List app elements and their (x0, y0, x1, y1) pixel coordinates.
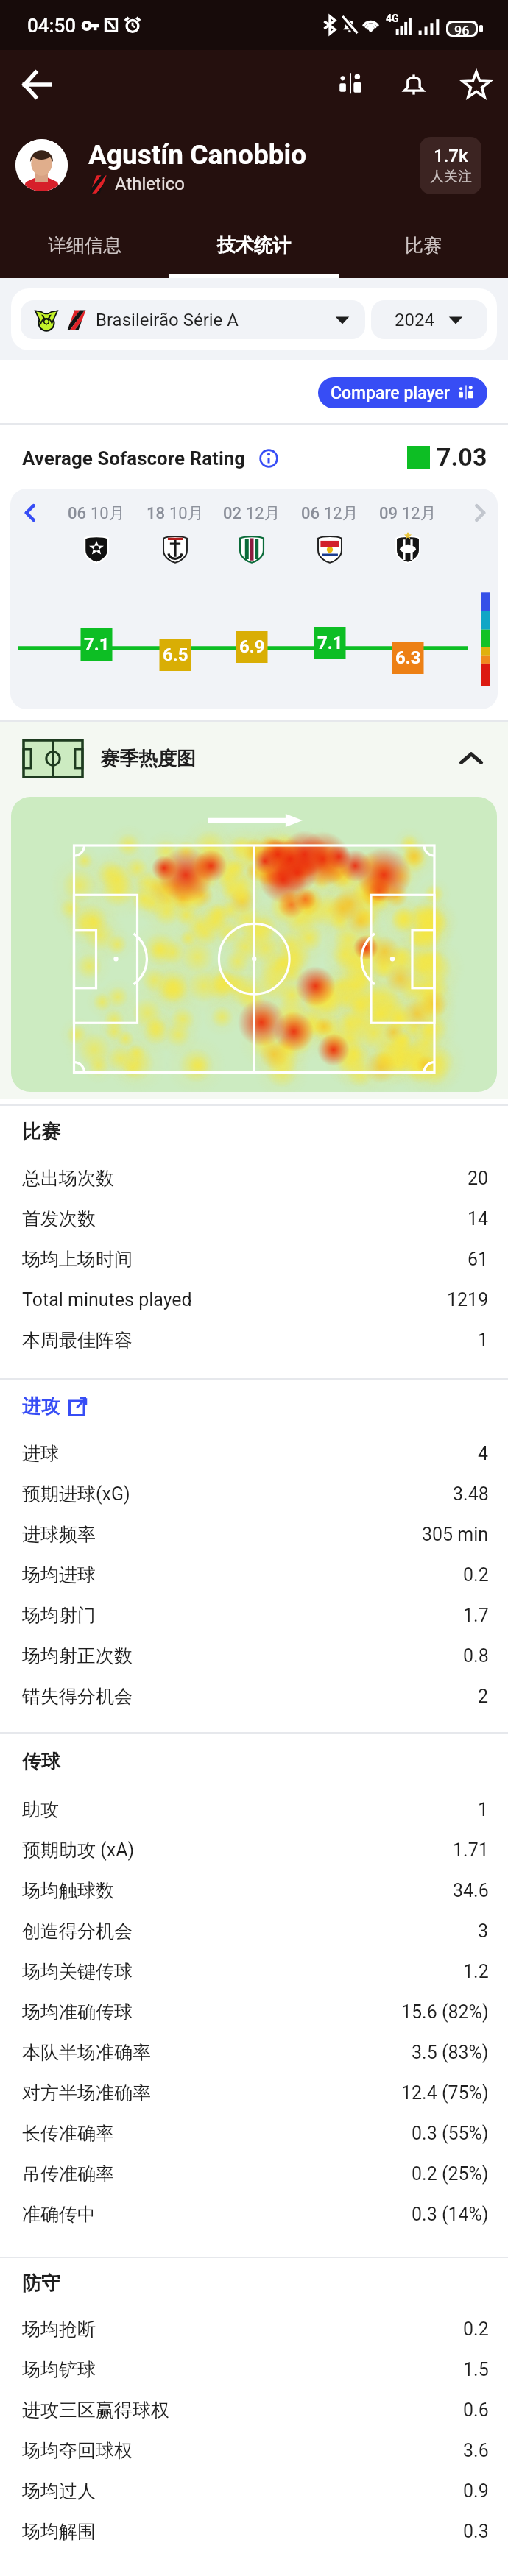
button[interactable]: 2024 (371, 300, 487, 339)
button[interactable]: 进攻三区赢得球权 (0, 2390, 508, 2430)
staticText: 错失得分机会 (22, 1685, 133, 1708)
button[interactable]: 6.9 (236, 631, 268, 663)
staticText: 0.3 (14%) (412, 2204, 489, 2225)
button[interactable]: 场均过人 (0, 2471, 508, 2511)
staticText: 12.4 (75%) (401, 2082, 489, 2104)
button[interactable]: Back (18, 65, 56, 104)
staticText: 12月 (246, 503, 281, 524)
button[interactable]: 错失得分机会 (0, 1676, 508, 1717)
button[interactable]: Notifications (395, 65, 433, 104)
button[interactable]: 预期进球(xG) (0, 1474, 508, 1514)
staticText: 预期进球(xG) (22, 1483, 130, 1505)
staticText: 详细信息 (48, 234, 121, 257)
button[interactable]: Favorite (457, 65, 495, 104)
button[interactable]: Compare players (331, 65, 370, 104)
staticText: 06 (68, 504, 87, 523)
staticText: 7.03 (437, 442, 487, 472)
staticText: 0.8 (463, 1645, 489, 1667)
staticText: 首发次数 (22, 1207, 96, 1230)
staticText: 6.3 (395, 647, 421, 668)
button[interactable]: 进球 (0, 1433, 508, 1474)
staticText: 18 (147, 504, 166, 523)
button[interactable]: 场均夺回球权 (0, 2430, 508, 2471)
button[interactable]: 场均准确传球 (0, 1992, 508, 2032)
staticText: 15.6 (82%) (401, 2001, 489, 2023)
staticText: 场均触球数 (22, 1879, 114, 1902)
button[interactable]: 比赛 (339, 221, 508, 278)
staticText: 0.2 (463, 1564, 489, 1586)
button[interactable]: 场均铲球 (0, 2349, 508, 2390)
button[interactable]: 场均射门 (0, 1595, 508, 1636)
staticText: 1 (478, 1799, 489, 1820)
staticText: 02 (223, 504, 242, 523)
button[interactable]: 场均触球数 (0, 1870, 508, 1911)
button[interactable]: 助攻 (0, 1789, 508, 1830)
button[interactable]: Compare player (318, 377, 487, 408)
button[interactable]: 吊传准确率 (0, 2154, 508, 2194)
button[interactable]: 本队半场准确率 (0, 2032, 508, 2073)
staticText: 0.3 (463, 2521, 489, 2542)
button[interactable]: 进攻 (22, 1380, 508, 1433)
staticText: 10月 (91, 503, 125, 524)
button[interactable]: 长传准确率 (0, 2113, 508, 2154)
button[interactable]: 技术统计 (169, 221, 339, 278)
button[interactable]: Previous (14, 497, 46, 529)
button[interactable]: 创造得分机会 (0, 1911, 508, 1951)
staticText: 进攻 (22, 1394, 60, 1419)
staticText: 吊传准确率 (22, 2162, 114, 2185)
staticText: 7.1 (317, 633, 343, 653)
button[interactable]: Next (464, 497, 496, 529)
button[interactable]: 场均射正次数 (0, 1636, 508, 1676)
staticText: 20 (468, 1168, 489, 1189)
staticText: 长传准确率 (22, 2122, 114, 2145)
staticText: 61 (468, 1249, 489, 1270)
staticText: 场均关键传球 (22, 1960, 133, 1983)
button[interactable]: 首发次数 (0, 1199, 508, 1239)
button[interactable]: 场均进球 (0, 1555, 508, 1595)
staticText: 09 (379, 504, 398, 523)
staticText: 传球 (22, 1750, 60, 1774)
button[interactable]: Brasileirão Série A (21, 300, 365, 339)
staticText: 本队半场准确率 (22, 2041, 151, 2064)
staticText: Total minutes played (22, 1289, 192, 1310)
button[interactable]: 6.5 (160, 639, 191, 671)
staticText: 0.2 (25%) (412, 2163, 489, 2185)
button[interactable]: 本周最佳阵容 (0, 1320, 508, 1360)
button[interactable]: 7.1 (314, 627, 346, 659)
staticText: 本周最佳阵容 (22, 1329, 133, 1352)
staticText: 2 (478, 1686, 489, 1707)
button[interactable]: 详细信息 (0, 221, 169, 278)
button[interactable]: 6.3 (392, 642, 424, 674)
staticText: 对方半场准确率 (22, 2082, 151, 2104)
button[interactable]: 场均抢断 (0, 2309, 508, 2349)
button[interactable]: Total minutes played (0, 1280, 508, 1320)
button[interactable]: 进球频率 (0, 1514, 508, 1555)
staticText: 3.6 (463, 2440, 489, 2461)
staticText: 3.48 (453, 1483, 489, 1505)
button[interactable]: 准确传中 (0, 2194, 508, 2235)
staticText: 人关注 (430, 168, 472, 185)
staticText: 预期助攻 (xA) (22, 1839, 135, 1862)
staticText: 准确传中 (22, 2203, 96, 2226)
staticText: 技术统计 (217, 234, 291, 257)
button[interactable]: 对方半场准确率 (0, 2073, 508, 2113)
staticText: 场均射正次数 (22, 1644, 133, 1667)
button[interactable]: 赛季热度图 (0, 720, 508, 797)
button[interactable]: 场均解围 (0, 2511, 508, 2552)
staticText: 04:50 (27, 15, 76, 37)
button[interactable]: 1.7k (420, 137, 481, 194)
staticText: 场均抢断 (22, 2318, 96, 2341)
staticText: 6.9 (239, 636, 265, 657)
staticText: Compare player (331, 383, 450, 403)
button[interactable]: 预期助攻 (xA) (0, 1830, 508, 1870)
staticText: 12月 (324, 503, 359, 524)
staticText: 7.1 (84, 634, 110, 655)
staticText: 3.5 (83%) (412, 2042, 489, 2063)
staticText: 305 min (422, 1524, 489, 1545)
staticText: 1 (478, 1330, 489, 1351)
button[interactable]: 总出场次数 (0, 1158, 508, 1199)
button[interactable]: 场均上场时间 (0, 1239, 508, 1280)
staticText: 1219 (447, 1289, 489, 1310)
button[interactable]: 7.1 (81, 628, 113, 661)
button[interactable]: 场均关键传球 (0, 1951, 508, 1992)
